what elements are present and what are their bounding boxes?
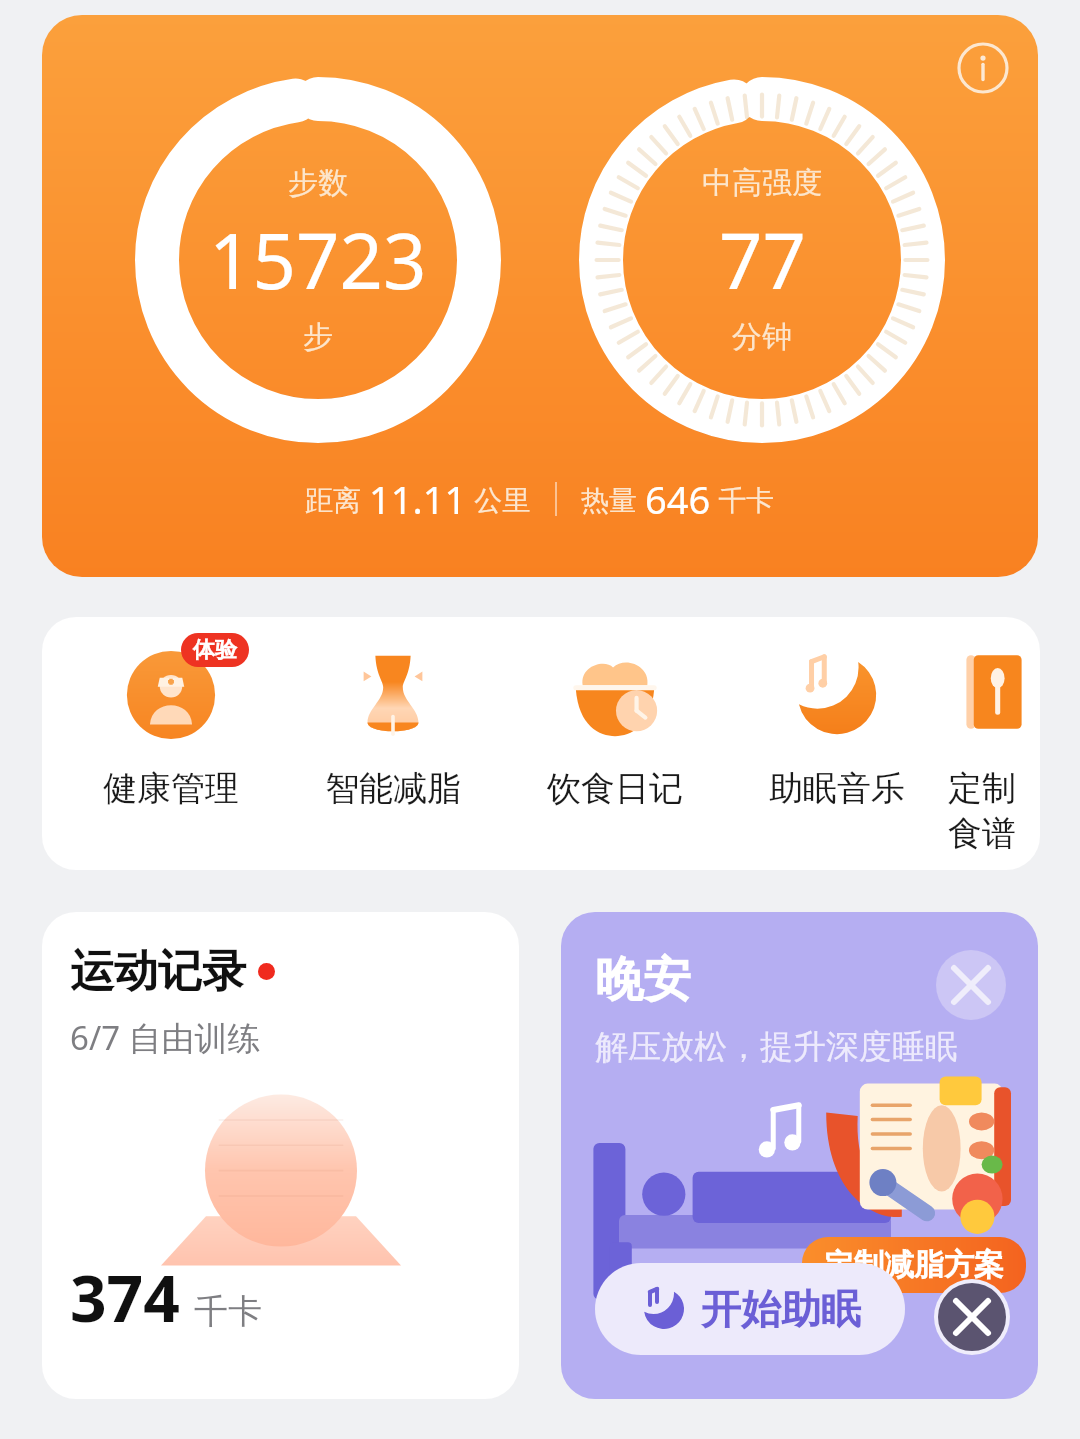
staticText: 77	[719, 208, 806, 312]
button[interactable]: 晚安	[561, 912, 1038, 1399]
button[interactable]: 饮食日记	[504, 641, 726, 810]
staticText: 定制食谱	[948, 767, 1040, 855]
staticText: 定制减脂方案	[824, 1246, 1004, 1284]
button[interactable]: 定制食谱	[948, 641, 1040, 855]
staticText: 15723	[209, 208, 427, 312]
staticText: 步数	[288, 164, 348, 202]
staticText: 374	[70, 1254, 180, 1341]
staticText: 晚安	[595, 950, 691, 1010]
staticText: 公里	[467, 480, 531, 518]
button[interactable]: Dismiss	[938, 1283, 1006, 1351]
staticText: 热量	[581, 480, 645, 518]
button[interactable]: 运动记录	[42, 912, 519, 1399]
staticText: 智能减脂	[325, 767, 461, 810]
staticText: 体验	[193, 636, 237, 664]
button[interactable]: 开始助眠	[595, 1263, 905, 1355]
button[interactable]: 体验	[60, 641, 282, 810]
staticText: 步	[303, 318, 333, 356]
staticText: 千卡	[711, 480, 775, 518]
staticText: 11.11	[369, 473, 467, 525]
staticText: 中高强度	[702, 164, 822, 202]
staticText: 健康管理	[103, 767, 239, 810]
button[interactable]: Info	[42, 15, 1038, 577]
button[interactable]: 助眠音乐	[726, 641, 948, 810]
staticText: 开始助眠	[701, 1284, 861, 1334]
staticText: 分钟	[732, 318, 792, 356]
button[interactable]: 定制减脂方案	[824, 1246, 1004, 1284]
staticText: 6/7 自由训练	[70, 1015, 261, 1060]
staticText: 运动记录	[70, 944, 246, 999]
staticText: 饮食日记	[547, 767, 683, 810]
staticText: 解压放松，提升深度睡眠	[595, 1026, 958, 1068]
button[interactable]: 智能减脂	[282, 641, 504, 810]
staticText: 距离	[305, 480, 369, 518]
button[interactable]: Close	[936, 950, 1006, 1020]
staticText: 助眠音乐	[769, 767, 905, 810]
staticText: 646	[645, 473, 711, 525]
staticText: 千卡	[194, 1290, 262, 1333]
button[interactable]: Info	[952, 37, 1014, 99]
